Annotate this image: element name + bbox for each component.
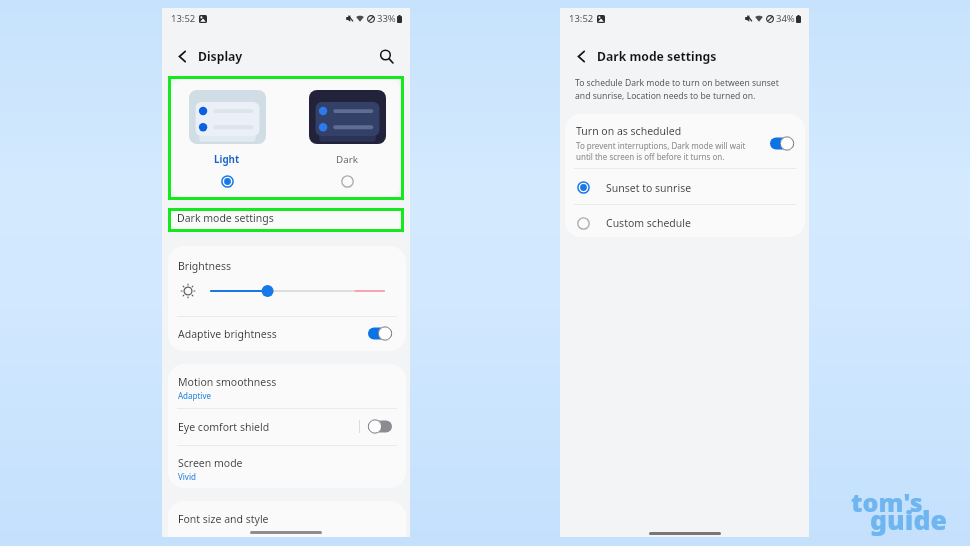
button[interactable]: Adaptive brightness: [178, 316, 392, 351]
button[interactable]: Dark mode settings: [168, 208, 404, 232]
button[interactable]: Turn on as scheduled: [576, 114, 794, 172]
button[interactable]: Eye comfort shield: [178, 408, 392, 445]
staticText: Font size and style: [178, 512, 269, 526]
staticText: Vivid: [178, 471, 196, 482]
staticText: Brightness: [178, 259, 232, 273]
button[interactable]: On: [368, 326, 392, 341]
staticText: Light: [214, 153, 240, 166]
staticText: Turn on as scheduled: [576, 124, 682, 138]
staticText: Dark: [336, 153, 358, 166]
staticText: Screen mode: [178, 456, 243, 470]
button[interactable]: Light: [187, 90, 267, 188]
staticText: Dark mode settings: [597, 48, 717, 65]
staticText: Motion smoothness: [178, 375, 277, 389]
button[interactable]: Search: [376, 46, 396, 66]
button[interactable]: Off: [368, 419, 392, 434]
button[interactable]: Back: [172, 46, 192, 66]
button[interactable]: Dark: [307, 90, 387, 188]
staticText: 13:52: [171, 12, 196, 25]
staticText: 13:52: [569, 12, 594, 25]
staticText: To schedule Dark mode to turn on between…: [575, 77, 779, 102]
button[interactable]: Sunset to sunrise: [577, 170, 805, 205]
button[interactable]: On: [770, 136, 794, 151]
staticText: Sunset to sunrise: [606, 181, 692, 195]
staticText: tom's: [851, 485, 923, 519]
staticText: Eye comfort shield: [178, 420, 270, 434]
staticText: Adaptive brightness: [178, 327, 277, 341]
button[interactable]: Motion smoothness: [178, 375, 277, 401]
staticText: Adaptive: [178, 390, 211, 401]
staticText: Display: [198, 48, 243, 65]
button[interactable]: Screen mode: [178, 456, 243, 482]
button[interactable]: Back: [571, 46, 591, 66]
button[interactable]: Font size and style: [168, 501, 406, 537]
staticText: 34%: [776, 12, 795, 25]
staticText: guide: [870, 502, 947, 538]
staticText: 33%: [377, 12, 396, 25]
button[interactable]: Custom schedule: [577, 206, 805, 237]
staticText: To prevent interruptions, Dark mode will…: [576, 140, 746, 162]
staticText: Custom schedule: [606, 216, 691, 230]
staticText: Dark mode settings: [177, 211, 274, 225]
